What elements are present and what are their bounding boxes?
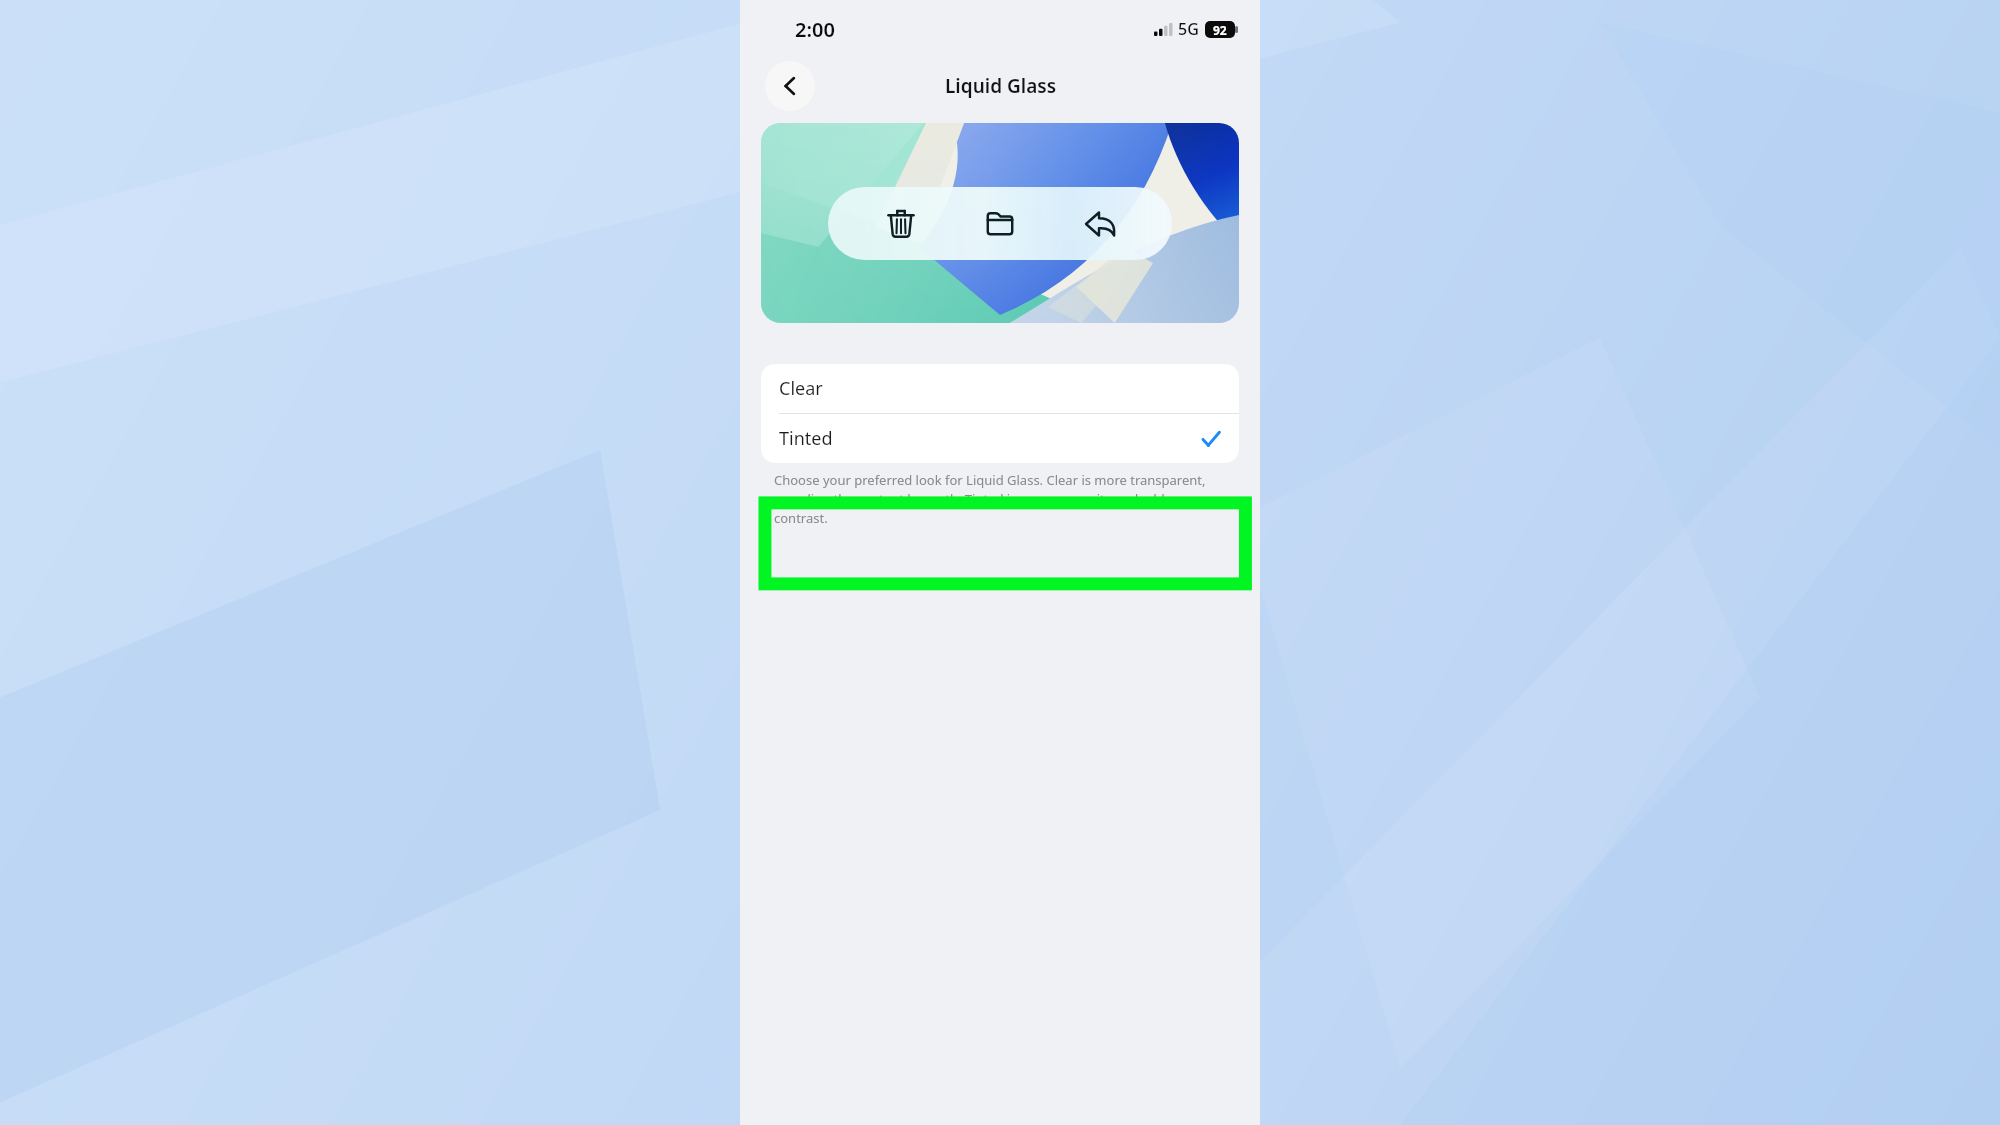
button[interactable]: Delete (875, 198, 927, 250)
staticText: Liquid Glass (945, 73, 1056, 99)
button[interactable]: Back (765, 61, 815, 111)
button[interactable]: Move to folder (974, 198, 1026, 250)
staticText: Tinted (779, 426, 1201, 451)
staticText: 2:00 (795, 16, 835, 43)
staticText: 5G (1178, 18, 1199, 40)
staticText: 92 (1213, 22, 1227, 38)
button[interactable]: Tinted (761, 414, 1239, 463)
button[interactable]: Reply (1073, 198, 1125, 250)
staticText: Choose your preferred look for Liquid Gl… (774, 471, 1226, 527)
button[interactable]: Clear (761, 364, 1239, 413)
staticText: Clear (779, 376, 1221, 401)
